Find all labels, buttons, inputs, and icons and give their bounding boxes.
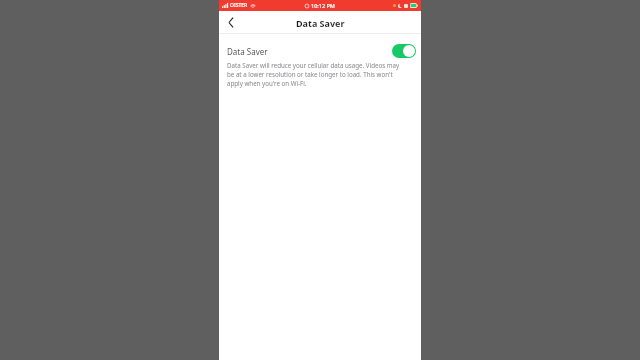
staticText: Data Saver [296, 17, 345, 29]
button[interactable]: Data Saver [219, 42, 421, 60]
button[interactable]: Data Saver toggle, on [392, 44, 416, 58]
button[interactable]: Back [219, 11, 243, 34]
staticText: OISTER [230, 2, 248, 9]
staticText: Data Saver [227, 46, 268, 57]
staticText: 10:12 PM [311, 2, 335, 9]
staticText: Data Saver will reduce your cellular dat… [227, 61, 405, 88]
